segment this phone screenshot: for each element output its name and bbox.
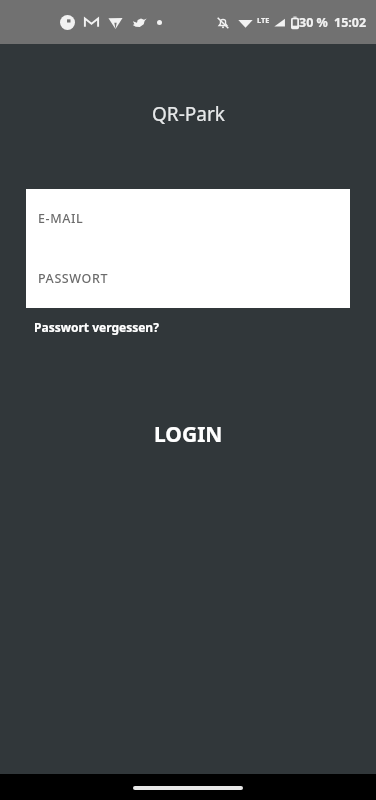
staticText: E-MAIL xyxy=(38,210,84,227)
staticText: 15:02 xyxy=(334,14,367,31)
button[interactable]: Passwort vergessen? xyxy=(34,316,159,338)
other: Home gesture bar xyxy=(133,786,243,790)
button[interactable]: E-MAIL xyxy=(26,189,350,248)
staticText: Passwort vergessen? xyxy=(34,319,159,335)
staticText: 30 % xyxy=(299,14,328,31)
staticText: QR-Park xyxy=(152,101,225,127)
staticText: PASSWORT xyxy=(38,270,109,287)
staticText: LOGIN xyxy=(154,420,223,449)
staticText: LTE xyxy=(257,15,270,25)
button[interactable]: LOGIN xyxy=(0,420,376,449)
button[interactable]: PASSWORT xyxy=(26,249,350,308)
